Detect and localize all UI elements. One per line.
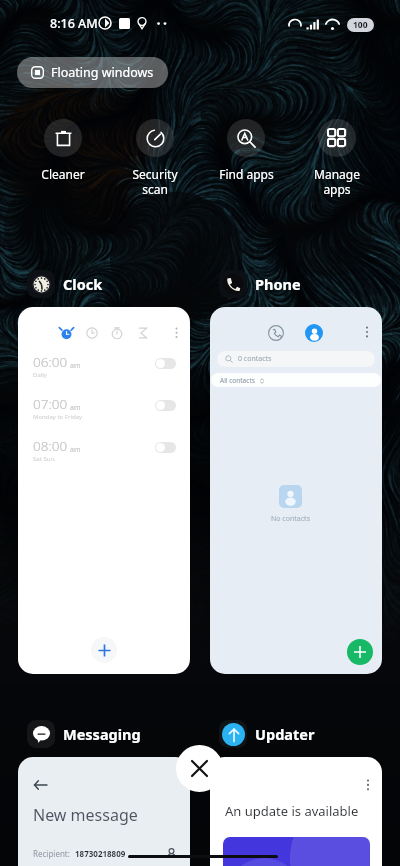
staticText: Clock [63, 274, 103, 294]
staticText: Find apps [219, 166, 274, 182]
button[interactable]: Find apps [203, 119, 289, 182]
button[interactable]: Floating windows [17, 57, 168, 88]
staticText: Manage apps [314, 166, 360, 197]
button[interactable]: 07:00 [18, 393, 190, 435]
button[interactable]: Messaging [27, 720, 141, 748]
staticText: am [70, 445, 81, 455]
staticText: 18730218809 [75, 848, 126, 859]
staticText: 07:00 [33, 395, 68, 413]
button[interactable]: Security scan [112, 119, 198, 197]
staticText: 06:00 [33, 353, 68, 371]
staticText: Daily [33, 371, 47, 379]
button[interactable]: Cleaner [20, 119, 106, 182]
button[interactable]: 06:00 [18, 307, 190, 674]
button[interactable]: 06:00 [18, 351, 190, 393]
button[interactable]: Toggle alarm [155, 442, 176, 453]
staticText: Phone [255, 274, 301, 294]
staticText: Monday to Friday [33, 413, 83, 421]
staticText: No contacts [271, 514, 310, 524]
staticText: 0 contacts [238, 354, 272, 364]
button[interactable]: Toggle alarm [155, 400, 176, 411]
staticText: am [70, 403, 81, 413]
button[interactable]: Phone [219, 270, 301, 298]
staticText: 8:16 AM [50, 15, 98, 32]
staticText: An update is available [225, 802, 359, 820]
staticText: Updater [255, 724, 315, 744]
staticText: Cleaner [41, 166, 85, 182]
button[interactable]: Add alarm [91, 637, 117, 663]
staticText: Security scan [132, 166, 178, 197]
staticText: am [70, 361, 81, 371]
staticText: New message [33, 804, 138, 826]
staticText: 08:00 [33, 437, 68, 455]
staticText: All contacts [220, 376, 255, 385]
staticText: 100 [353, 19, 368, 31]
button[interactable]: Manage apps [294, 119, 380, 197]
button[interactable]: 0 contacts [210, 307, 382, 674]
button[interactable]: Toggle alarm [155, 358, 176, 369]
staticText: Floating windows [51, 64, 154, 81]
staticText: Sat Sun. [33, 455, 56, 463]
button[interactable]: Add contact [347, 639, 373, 665]
button[interactable]: Close all [176, 745, 223, 792]
button[interactable]: New message [18, 757, 190, 866]
button[interactable]: Updater [219, 720, 315, 748]
staticText: Messaging [63, 724, 141, 744]
button[interactable]: 0 contacts [217, 351, 375, 367]
button[interactable]: Clock [27, 270, 103, 298]
staticText: Recipient: [33, 848, 70, 859]
button[interactable]: An update is available [210, 757, 382, 866]
button[interactable]: 08:00 [18, 435, 190, 477]
